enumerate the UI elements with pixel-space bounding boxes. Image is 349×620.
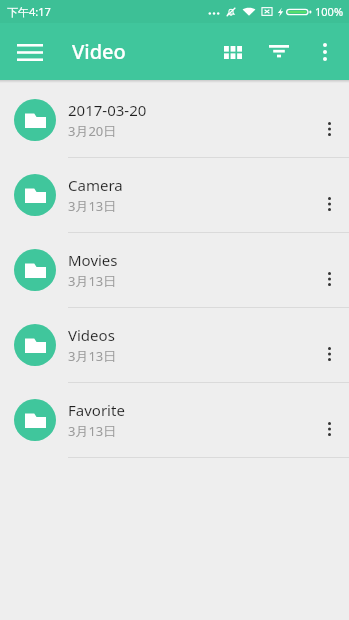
button[interactable]: Favorite <box>0 383 349 458</box>
staticText: Videos <box>68 325 115 345</box>
button[interactable]: More options <box>302 29 348 75</box>
staticText: Favorite <box>68 400 125 420</box>
staticText: 3月13日 <box>68 197 117 215</box>
staticText: 下午4:17 <box>7 4 51 19</box>
button[interactable]: More options for Movies <box>309 233 349 307</box>
button[interactable]: Sort <box>256 29 302 75</box>
staticText: 2017-03-20 <box>68 100 147 120</box>
staticText: 3月13日 <box>68 422 117 440</box>
button[interactable]: More options for Favorite <box>309 383 349 457</box>
button[interactable]: Camera <box>0 158 349 233</box>
staticText: Camera <box>68 175 123 195</box>
staticText: 3月13日 <box>68 347 117 365</box>
staticText: Movies <box>68 250 118 270</box>
button[interactable]: More options for Videos <box>309 308 349 382</box>
staticText: 3月13日 <box>68 272 117 290</box>
button[interactable]: More options for Camera <box>309 158 349 232</box>
staticText: Video <box>72 38 126 65</box>
button[interactable]: Grid view <box>210 29 256 75</box>
staticText: 3月20日 <box>68 122 117 140</box>
button[interactable]: More options for 2017-03-20 <box>309 83 349 157</box>
button[interactable]: 2017-03-20 <box>0 83 349 158</box>
button[interactable]: Videos <box>0 308 349 383</box>
button[interactable]: Movies <box>0 233 349 308</box>
staticText: 100% <box>315 4 344 19</box>
button[interactable]: Open navigation drawer <box>7 29 53 75</box>
